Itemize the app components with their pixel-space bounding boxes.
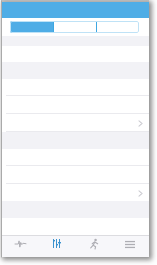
button[interactable] <box>2 46 149 63</box>
button[interactable] <box>2 114 149 132</box>
button[interactable] <box>97 21 139 33</box>
button[interactable] <box>10 21 53 33</box>
button[interactable] <box>2 79 149 96</box>
button[interactable] <box>2 166 149 184</box>
button[interactable]: Heart rate <box>2 236 39 257</box>
button[interactable]: Activity <box>75 236 112 257</box>
button[interactable] <box>2 184 149 202</box>
button[interactable] <box>2 96 149 114</box>
button[interactable]: Menu <box>112 236 149 257</box>
button[interactable]: Tune <box>39 236 76 257</box>
button[interactable] <box>2 149 149 166</box>
button[interactable] <box>54 21 96 33</box>
